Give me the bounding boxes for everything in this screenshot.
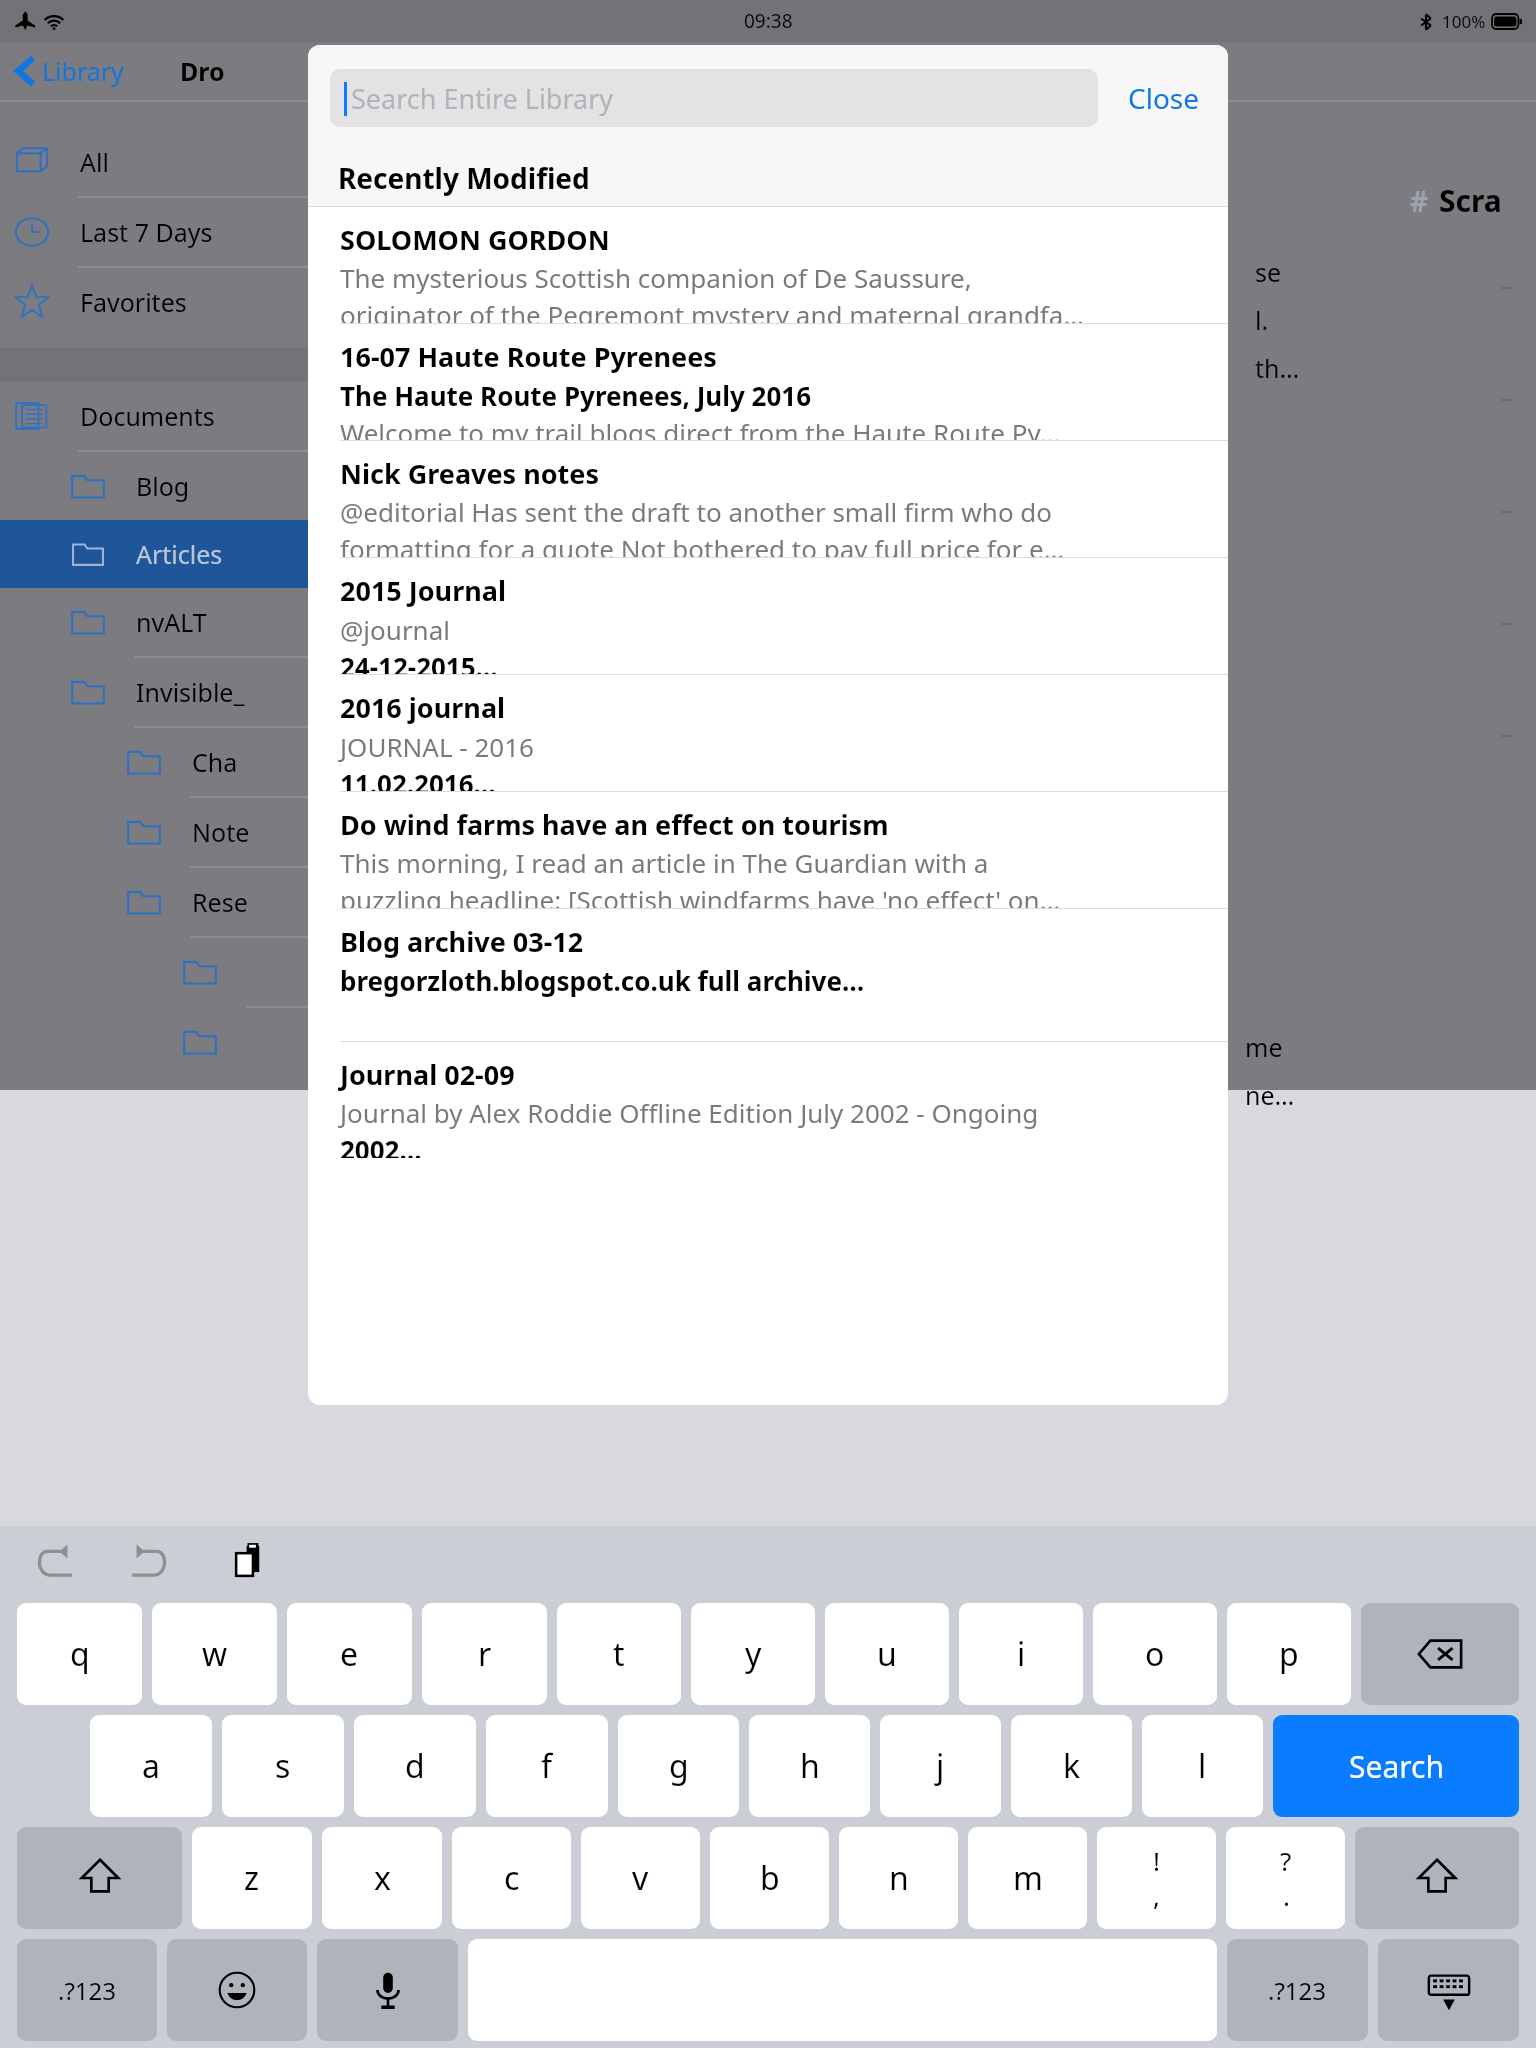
button[interactable]: f <box>486 1715 608 1817</box>
button[interactable]: g <box>618 1715 739 1817</box>
staticText: f <box>541 1744 553 1788</box>
staticText: u <box>877 1632 897 1676</box>
button[interactable]: .?123 <box>1227 1939 1368 2041</box>
staticText: l <box>1198 1744 1207 1788</box>
button[interactable]: a <box>90 1715 212 1817</box>
button[interactable]: p <box>1227 1603 1351 1705</box>
staticText: originator of the Pegremont mystery and … <box>340 297 1084 323</box>
button[interactable]: s <box>222 1715 344 1817</box>
button[interactable]: ? <box>1226 1827 1345 1929</box>
button[interactable]: Shift <box>1355 1827 1519 1929</box>
staticText: se <box>1255 255 1282 289</box>
button[interactable]: Articles <box>0 520 492 588</box>
button[interactable]: SOLOMON GORDON <box>308 207 1228 323</box>
button[interactable]: Cha <box>0 728 492 796</box>
button[interactable]: i <box>959 1603 1083 1705</box>
staticText: k <box>1063 1744 1081 1788</box>
button[interactable]: u <box>825 1603 949 1705</box>
button[interactable]: Last 7 Days <box>0 198 492 266</box>
button[interactable]: Dictation <box>317 1939 458 2041</box>
button[interactable]: w <box>152 1603 277 1705</box>
button[interactable]: b <box>710 1827 829 1929</box>
staticText: Nick Greaves notes <box>340 455 600 492</box>
staticText: Articles <box>136 537 223 571</box>
button[interactable]: ! <box>1097 1827 1216 1929</box>
staticText: n <box>889 1856 909 1900</box>
button[interactable]: Rese <box>0 868 492 936</box>
button[interactable]: Hide keyboard <box>1378 1939 1519 2041</box>
staticText: # <box>1410 182 1429 220</box>
button[interactable]: Journal 02-09 <box>308 1042 1228 1158</box>
button[interactable]: 16-07 Haute Route Pyrenees <box>308 324 1228 440</box>
button[interactable]: n <box>839 1827 958 1929</box>
button[interactable]: Nick Greaves notes <box>308 441 1228 557</box>
button[interactable]: Backspace <box>1361 1603 1519 1705</box>
button[interactable]: v <box>581 1827 700 1929</box>
button[interactable]: Documents <box>0 382 492 450</box>
button[interactable]: Redo <box>116 1530 180 1594</box>
button[interactable]: Undo <box>24 1530 88 1594</box>
button[interactable]: o <box>1093 1603 1217 1705</box>
staticText: Welcome to my trail blogs direct from th… <box>340 415 1061 440</box>
button[interactable]: Blog <box>0 452 492 520</box>
button[interactable]: r <box>422 1603 547 1705</box>
staticText: s <box>275 1744 291 1788</box>
button[interactable]: .?123 <box>17 1939 157 2041</box>
staticText: th… <box>1255 351 1300 385</box>
button[interactable]: Blog archive 03-12 <box>308 909 1228 1041</box>
button[interactable]: Favorites <box>0 268 492 336</box>
button[interactable]: 2015 Journal <box>308 558 1228 674</box>
staticText: nvALT <box>136 605 207 639</box>
staticText: j <box>936 1744 945 1788</box>
button[interactable]: c <box>452 1827 571 1929</box>
button[interactable]: h <box>749 1715 870 1817</box>
staticText: This morning, I read an article in The G… <box>340 845 989 880</box>
staticText: .?123 <box>58 1974 117 2007</box>
staticText: ! <box>1153 1843 1160 1878</box>
button[interactable] <box>0 1008 492 1076</box>
staticText: Blog archive 03-12 <box>340 923 584 960</box>
button[interactable]: Note <box>0 798 492 866</box>
button[interactable]: d <box>354 1715 476 1817</box>
button[interactable]: Close <box>1122 69 1206 127</box>
button[interactable]: nvALT <box>0 588 492 656</box>
button[interactable]: Shift <box>17 1827 182 1929</box>
staticText: puzzling headline: [Scottish windfarms h… <box>340 882 1061 908</box>
button[interactable]: l <box>1142 1715 1263 1817</box>
staticText: Favorites <box>80 285 187 319</box>
staticText: d <box>405 1744 425 1788</box>
button[interactable]: k <box>1011 1715 1132 1817</box>
staticText: Scra <box>1439 180 1502 221</box>
staticText: @journal <box>340 612 450 647</box>
staticText: x <box>374 1856 391 1900</box>
button[interactable]: j <box>880 1715 1001 1817</box>
staticText: o <box>1145 1632 1165 1676</box>
button[interactable]: e <box>287 1603 412 1705</box>
button[interactable]: Do wind farms have an effect on tourism <box>308 792 1228 908</box>
staticText: t <box>613 1632 625 1676</box>
button[interactable]: m <box>968 1827 1087 1929</box>
staticText: bregorzloth.blogspot.co.uk full archive… <box>340 963 865 998</box>
staticText: y <box>745 1632 762 1676</box>
button[interactable]: t <box>557 1603 681 1705</box>
staticText: . <box>1283 1878 1290 1913</box>
button[interactable]: Search Entire Library <box>330 69 1098 127</box>
button[interactable]: q <box>17 1603 142 1705</box>
staticText: Note <box>192 815 250 849</box>
staticText: JOURNAL - 2016 <box>340 729 534 764</box>
staticText: Invisible_ <box>136 675 245 709</box>
button[interactable]: x <box>322 1827 442 1929</box>
staticText: m <box>1013 1856 1043 1900</box>
button[interactable]: 2016 journal <box>308 675 1228 791</box>
staticText: Recently Modified <box>338 159 590 197</box>
button[interactable] <box>0 938 492 1006</box>
button[interactable]: Emoji <box>167 1939 307 2041</box>
button[interactable]: z <box>192 1827 312 1929</box>
button[interactable]: All <box>0 128 492 196</box>
staticText: v <box>632 1856 649 1900</box>
button[interactable]: Paste <box>218 1530 282 1594</box>
button[interactable]: Invisible_ <box>0 658 492 726</box>
button[interactable]: y <box>691 1603 815 1705</box>
button[interactable]: Search <box>1273 1715 1519 1817</box>
